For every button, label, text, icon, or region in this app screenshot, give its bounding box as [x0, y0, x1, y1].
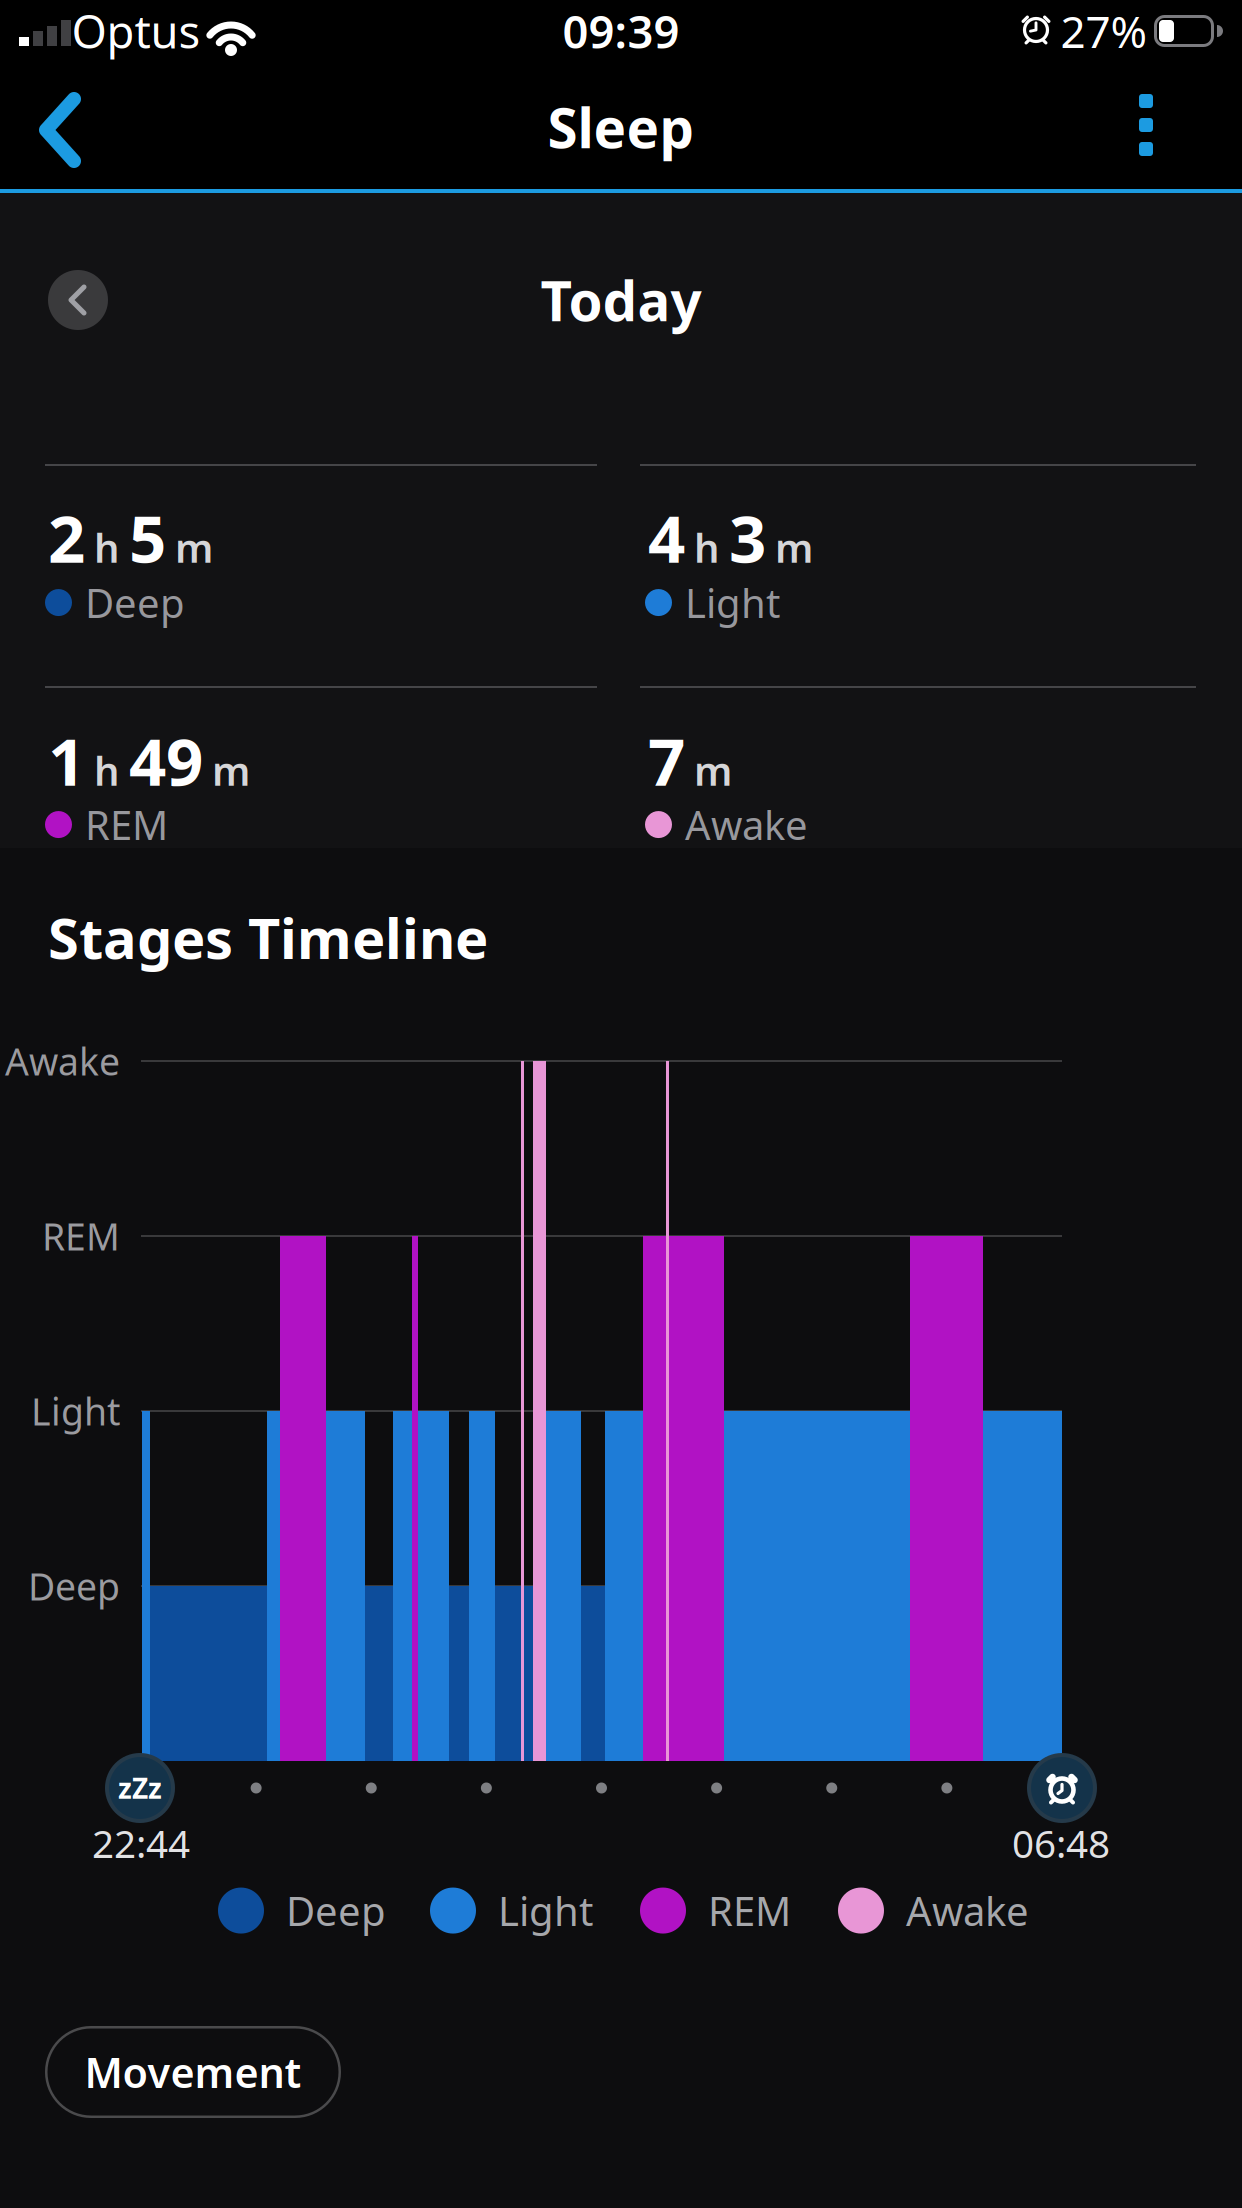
- staticText: Today: [540, 264, 701, 336]
- staticText: m: [694, 744, 732, 797]
- staticText: 09:39: [562, 1, 679, 61]
- staticText: REM: [85, 798, 168, 851]
- staticText: 49: [129, 717, 203, 804]
- staticText: 06:48: [1012, 1817, 1110, 1869]
- staticText: Movement: [84, 2045, 301, 2099]
- button[interactable]: [28, 76, 138, 184]
- staticText: m: [775, 521, 813, 574]
- staticText: m: [175, 521, 213, 574]
- staticText: Light: [685, 576, 780, 629]
- button[interactable]: [1106, 71, 1186, 179]
- staticText: 3: [729, 494, 766, 581]
- staticText: Stages Timeline: [48, 900, 488, 974]
- staticText: Deep: [28, 1561, 120, 1611]
- button[interactable]: Movement: [45, 2026, 341, 2118]
- staticText: 4: [648, 494, 685, 581]
- staticText: Awake: [906, 1884, 1029, 1937]
- staticText: 5: [129, 494, 166, 581]
- staticText: Deep: [85, 576, 185, 629]
- staticText: 27%: [1060, 2, 1147, 60]
- staticText: REM: [42, 1211, 120, 1261]
- staticText: Light: [31, 1386, 120, 1436]
- staticText: zZz: [118, 1769, 162, 1807]
- button[interactable]: [48, 270, 108, 330]
- staticText: Awake: [685, 798, 808, 851]
- staticText: Light: [498, 1884, 593, 1937]
- staticText: REM: [708, 1884, 791, 1937]
- staticText: Deep: [286, 1884, 386, 1937]
- staticText: Awake: [5, 1036, 120, 1086]
- staticText: 2: [48, 494, 85, 581]
- staticText: 1: [48, 717, 85, 804]
- staticText: h: [94, 521, 120, 574]
- staticText: 7: [648, 717, 685, 804]
- staticText: Sleep: [547, 91, 694, 163]
- staticText: m: [212, 744, 250, 797]
- staticText: h: [694, 521, 720, 574]
- staticText: h: [94, 744, 120, 797]
- staticText: 22:44: [92, 1817, 190, 1869]
- staticText: Optus: [71, 1, 200, 61]
